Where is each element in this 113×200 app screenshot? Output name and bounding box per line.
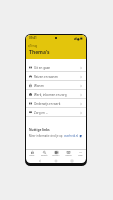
- button[interactable]: Reizen en wonen: [26, 72, 86, 81]
- staticText: Nuttige links: [29, 128, 50, 132]
- button[interactable]: Terug: [28, 44, 38, 48]
- staticText: Meer: [78, 154, 83, 157]
- button[interactable]: Thema's: [50, 150, 62, 158]
- button[interactable]: Wonen: [26, 81, 86, 90]
- button[interactable]: Zoeken: [38, 150, 50, 158]
- staticText: Nieuws: [65, 154, 72, 157]
- staticText: Home: [29, 154, 35, 157]
- staticText: Terug: [30, 44, 38, 48]
- staticText: Uit en gaan: [34, 66, 51, 70]
- button[interactable]: Uit en gaan: [26, 63, 86, 72]
- button[interactable]: Meer: [74, 150, 86, 158]
- button[interactable]: Zorg en ...: [26, 108, 86, 117]
- button[interactable]: Back: [38, 159, 42, 163]
- staticText: Zorg en ...: [34, 111, 49, 115]
- staticText: Onderwijs en werk: [34, 102, 61, 106]
- staticText: Thema's: [29, 49, 50, 56]
- staticText: Reizen en wonen: [34, 75, 58, 79]
- button[interactable]: overheid.nl: [64, 134, 82, 138]
- staticText: overheid.nl: [64, 134, 79, 138]
- button[interactable]: Onderwijs en werk: [26, 99, 86, 108]
- staticText: Wonen: [34, 84, 44, 88]
- button[interactable]: Recent apps: [70, 159, 74, 163]
- staticText: 09:41: [29, 36, 37, 40]
- staticText: Thema's: [52, 154, 60, 157]
- button[interactable]: Home: [54, 159, 58, 163]
- button[interactable]: Nieuws: [62, 150, 74, 158]
- staticText: Werk, inkomen en zorg: [34, 93, 67, 97]
- staticText: Zoeken: [41, 154, 48, 157]
- staticText: Meer informatie vind je op: [29, 134, 64, 138]
- button[interactable]: Home: [26, 150, 38, 158]
- button[interactable]: Werk, inkomen en zorg: [26, 90, 86, 99]
